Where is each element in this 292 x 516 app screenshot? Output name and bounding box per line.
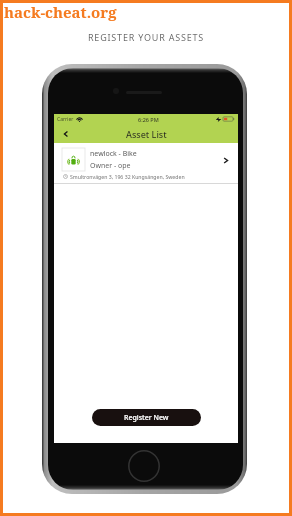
staticText: Owner - ope	[90, 161, 131, 171]
staticText: hack-cheat.org	[4, 2, 117, 22]
button[interactable]: Register New	[92, 409, 201, 426]
staticText: Carrier	[57, 116, 74, 123]
button[interactable]: Back	[58, 126, 74, 142]
staticText: Smultronvägen 3, 196 32 Kungsängen, Swed…	[70, 173, 185, 180]
staticText: 6:26 PM	[138, 116, 159, 123]
staticText: newlock - Bike	[90, 149, 137, 159]
staticText: Asset List	[126, 128, 167, 140]
button[interactable]: newlock - Bike	[54, 143, 238, 184]
staticText: Register New	[124, 413, 169, 423]
staticText: REGISTER YOUR ASSETS	[0, 31, 292, 43]
